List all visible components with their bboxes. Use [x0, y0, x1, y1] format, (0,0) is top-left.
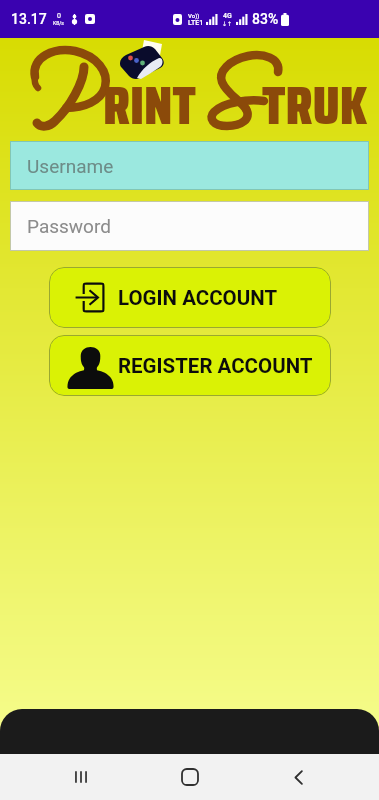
- staticText: TRUK: [262, 63, 368, 148]
- staticText: Vo)): [188, 12, 200, 19]
- staticText: 83%: [252, 11, 279, 27]
- staticText: 4G: [223, 12, 232, 20]
- button[interactable]: Recent apps: [54, 754, 108, 800]
- button[interactable]: REGISTER ACCOUNT: [49, 335, 331, 396]
- staticText: 0: [57, 12, 61, 20]
- staticText: RINT: [103, 63, 196, 148]
- button[interactable]: Password: [10, 201, 369, 251]
- staticText: ↓↑: [222, 20, 233, 27]
- staticText: LOGIN ACCOUNT: [118, 286, 278, 310]
- button[interactable]: Username: [10, 141, 369, 190]
- button[interactable]: Back: [271, 754, 325, 800]
- staticText: Password: [27, 215, 111, 237]
- staticText: KB/s: [53, 20, 64, 26]
- button[interactable]: LOGIN ACCOUNT: [49, 267, 331, 328]
- staticText: LTE1: [188, 19, 204, 27]
- button[interactable]: Home: [163, 754, 217, 800]
- staticText: 13.17: [11, 11, 47, 27]
- staticText: REGISTER ACCOUNT: [118, 354, 313, 378]
- staticText: Username: [27, 155, 114, 177]
